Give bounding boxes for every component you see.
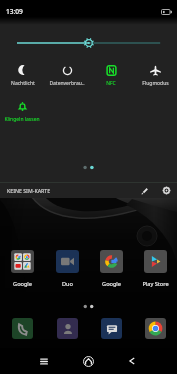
staticText: 13:09: [6, 7, 23, 16]
button[interactable]: NFC: [89, 61, 133, 90]
button[interactable]: Messages: [101, 318, 122, 339]
button[interactable]: Duo: [45, 250, 89, 288]
button[interactable]: Phone: [12, 318, 33, 339]
staticText: Duo: [62, 280, 73, 288]
button[interactable]: Google: [89, 250, 133, 288]
staticText: Flugmodus: [142, 80, 169, 87]
staticText: Klingeln lassen: [4, 116, 40, 123]
staticText: Datenverbrau..: [49, 80, 85, 87]
button[interactable]: Nachtlicht: [0, 61, 45, 90]
button[interactable]: Edit: [137, 183, 152, 198]
button[interactable]: Settings: [159, 183, 174, 198]
staticText: NFC: [106, 80, 116, 87]
staticText: Google: [13, 280, 32, 288]
staticText: Play Store: [142, 280, 169, 288]
button[interactable]: Contacts: [57, 318, 78, 339]
staticText: KEINE SIM-KARTE: [7, 187, 51, 194]
staticText: Google: [102, 280, 121, 288]
button[interactable]: Back: [110, 348, 154, 374]
button[interactable]: Flugmodus: [133, 61, 177, 90]
button[interactable]: Home: [66, 348, 110, 374]
button[interactable]: Chrome: [145, 318, 166, 339]
staticText: Nachtlicht: [11, 80, 35, 87]
button[interactable]: Recent apps: [22, 348, 66, 374]
button[interactable]: Klingeln lassen: [0, 97, 44, 126]
button[interactable]: Datenverbrau..: [45, 61, 89, 90]
button[interactable]: Google: [0, 250, 45, 288]
button[interactable]: Play Store: [133, 250, 177, 288]
